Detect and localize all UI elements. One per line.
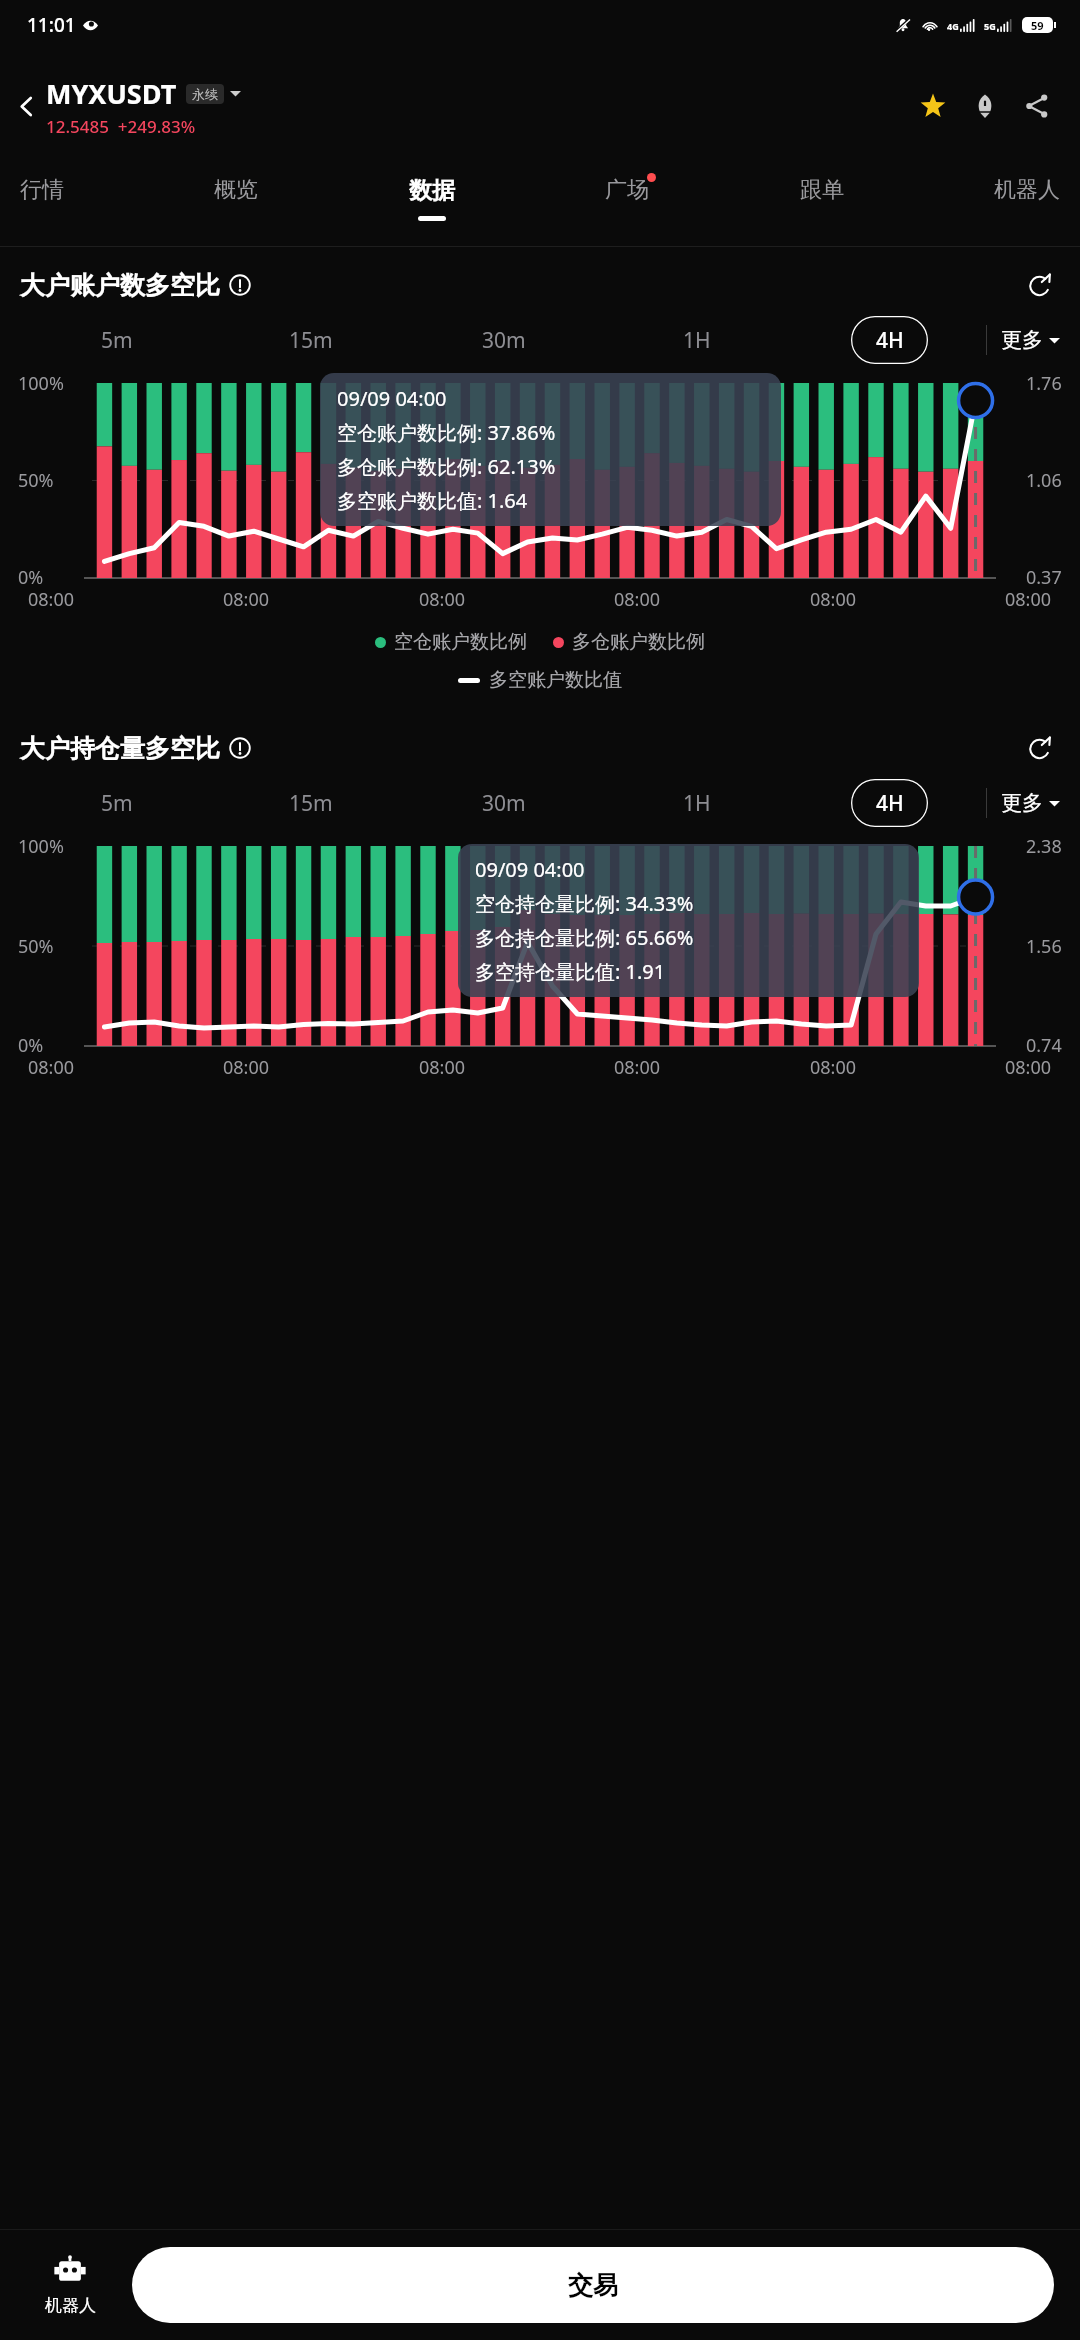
staticText: 08:00: [28, 587, 75, 612]
button[interactable]: 4H: [851, 779, 928, 827]
staticText: 08:00: [810, 1055, 857, 1080]
button[interactable]: 15m: [214, 774, 407, 832]
staticText: 5G: [984, 20, 996, 32]
staticText: 机器人: [45, 2295, 96, 2316]
staticText: 08:00: [1005, 1055, 1052, 1080]
button[interactable]: 跟单: [800, 162, 844, 204]
staticText: 行情: [20, 176, 64, 204]
staticText: 12.5485 +249.83%: [46, 115, 196, 138]
button[interactable]: Share: [1014, 83, 1060, 129]
staticText: 5m: [101, 789, 133, 818]
staticText: 08:00: [223, 1055, 270, 1080]
button[interactable]: 更多: [1001, 327, 1060, 353]
staticText: 多仓账户数比例: [572, 630, 705, 654]
button[interactable]: 4H: [851, 316, 928, 364]
staticText: 0%: [18, 565, 44, 590]
button[interactable]: 1H: [600, 311, 793, 369]
staticText: 08:00: [419, 587, 466, 612]
button[interactable]: 1H: [600, 774, 793, 832]
staticText: 100%: [18, 371, 64, 396]
button[interactable]: Back: [0, 80, 52, 132]
staticText: 多空账户数比值: [489, 668, 622, 692]
staticText: 多空账户数比值: 1.64: [337, 487, 528, 514]
staticText: 08:00: [28, 1055, 75, 1080]
staticText: 空仓持仓量比例: 34.33%: [475, 890, 694, 917]
staticText: 永续: [192, 86, 218, 102]
staticText: 1.06: [1026, 468, 1062, 493]
button[interactable]: 广场: [605, 162, 649, 204]
staticText: 多仓账户数比例: 62.13%: [337, 453, 556, 480]
staticText: 100%: [18, 834, 64, 859]
staticText: 1.56: [1026, 934, 1062, 959]
staticText: 15m: [289, 789, 333, 818]
staticText: 50%: [18, 934, 54, 959]
staticText: 09/09 04:00: [475, 856, 585, 883]
button[interactable]: 概览: [214, 162, 258, 204]
button[interactable]: 更多: [1001, 790, 1060, 816]
staticText: 30m: [482, 789, 526, 818]
staticText: 多仓持仓量比例: 65.66%: [475, 924, 694, 951]
staticText: 多空持仓量比值: 1.91: [475, 958, 666, 985]
staticText: 4H: [876, 326, 904, 355]
button[interactable]: 15m: [214, 311, 407, 369]
staticText: 机器人: [994, 176, 1060, 204]
staticText: 空仓账户数比例: [394, 630, 527, 654]
staticText: 50%: [18, 468, 54, 493]
staticText: 08:00: [614, 587, 661, 612]
staticText: 08:00: [810, 587, 857, 612]
staticText: 08:00: [1005, 587, 1052, 612]
button[interactable]: 5m: [20, 311, 214, 369]
staticText: 数据: [409, 176, 455, 205]
staticText: MYXUSDT: [46, 75, 177, 112]
staticText: 广场: [605, 176, 649, 204]
staticText: 08:00: [614, 1055, 661, 1080]
staticText: 09/09 04:00: [337, 385, 447, 412]
staticText: 交易: [568, 2270, 618, 2301]
button[interactable]: 机器人: [22, 2230, 118, 2340]
staticText: 1H: [683, 789, 711, 818]
button[interactable]: 行情: [20, 162, 64, 204]
button[interactable]: Favorite: [910, 83, 956, 129]
staticText: 更多: [1001, 327, 1043, 353]
staticText: 11:01: [27, 12, 76, 38]
button[interactable]: 5m: [20, 774, 214, 832]
staticText: 5m: [101, 326, 133, 355]
button[interactable]: 30m: [407, 774, 600, 832]
staticText: 4G: [947, 20, 959, 32]
staticText: 08:00: [223, 587, 270, 612]
staticText: 0%: [18, 1033, 44, 1058]
staticText: 2.38: [1026, 834, 1062, 859]
button[interactable]: 交易: [132, 2247, 1054, 2323]
staticText: 59: [1031, 18, 1044, 33]
staticText: 更多: [1001, 790, 1043, 816]
staticText: 0.37: [1026, 565, 1062, 590]
staticText: 1.76: [1026, 371, 1062, 396]
staticText: 0.74: [1026, 1033, 1062, 1058]
staticText: 08:00: [419, 1055, 466, 1080]
button[interactable]: 机器人: [994, 162, 1060, 204]
staticText: 跟单: [800, 176, 844, 204]
staticText: 4H: [876, 789, 904, 818]
button[interactable]: Expand chart: [1018, 727, 1060, 769]
staticText: 大户持仓量多空比: [20, 733, 220, 764]
staticText: 1H: [683, 326, 711, 355]
button[interactable]: Alerts: [962, 83, 1008, 129]
button[interactable]: 数据: [409, 162, 455, 221]
button[interactable]: Expand chart: [1018, 264, 1060, 306]
button[interactable]: 30m: [407, 311, 600, 369]
staticText: 大户账户数多空比: [20, 270, 220, 301]
staticText: 空仓账户数比例: 37.86%: [337, 419, 556, 446]
staticText: 概览: [214, 176, 258, 204]
staticText: 15m: [289, 326, 333, 355]
staticText: 30m: [482, 326, 526, 355]
